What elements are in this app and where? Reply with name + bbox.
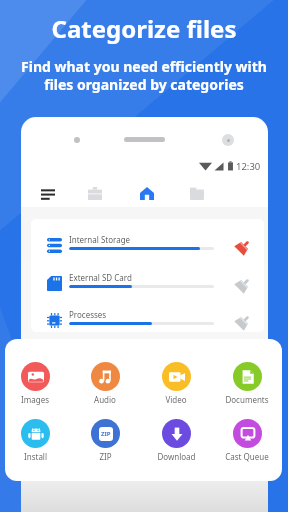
staticText: Documents bbox=[225, 394, 269, 405]
staticText: Audio bbox=[94, 394, 116, 405]
staticText: Cast Queue bbox=[225, 451, 269, 462]
staticText: Images bbox=[21, 394, 49, 405]
button[interactable]: Download bbox=[142, 419, 210, 462]
button[interactable]: ZIP bbox=[71, 419, 139, 462]
staticText: Categorize files bbox=[0, 12, 288, 45]
button[interactable]: Images bbox=[5, 362, 69, 405]
staticText: Processes bbox=[69, 309, 107, 320]
button[interactable]: Clean bbox=[232, 235, 254, 257]
staticText: External SD Card bbox=[69, 272, 132, 283]
button[interactable]: Documents bbox=[213, 362, 281, 405]
staticText: ZIP bbox=[99, 451, 112, 462]
button[interactable]: Processes bbox=[31, 304, 264, 332]
staticText: Download bbox=[157, 451, 196, 462]
button[interactable]: Clean bbox=[232, 273, 254, 295]
staticText: ZIP bbox=[101, 430, 111, 438]
button[interactable]: Clean bbox=[232, 310, 254, 332]
staticText: 12:30 bbox=[236, 160, 261, 173]
staticText: Install bbox=[24, 451, 47, 462]
button[interactable]: Tools bbox=[82, 180, 108, 206]
button[interactable]: Cast Queue bbox=[213, 419, 281, 462]
button[interactable]: External SD Card bbox=[31, 267, 264, 301]
button[interactable]: Install bbox=[5, 419, 69, 462]
button[interactable]: Files bbox=[184, 180, 210, 206]
staticText: Find what you need efficiently with file… bbox=[0, 57, 288, 94]
button[interactable]: Menu bbox=[35, 180, 61, 206]
staticText: Video bbox=[165, 394, 187, 405]
staticText: Internal Storage bbox=[69, 234, 131, 245]
button[interactable]: Internal Storage bbox=[31, 229, 264, 263]
button[interactable]: Video bbox=[142, 362, 210, 405]
button[interactable]: Audio bbox=[71, 362, 139, 405]
button[interactable]: Home bbox=[134, 180, 160, 206]
